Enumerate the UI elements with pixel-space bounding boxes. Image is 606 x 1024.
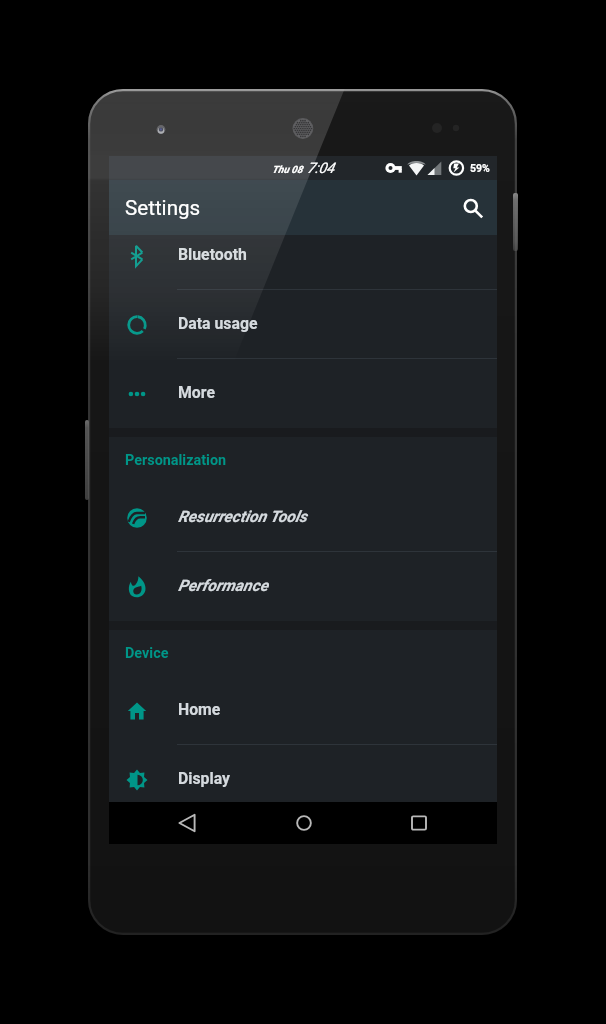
button[interactable]: Recents xyxy=(391,802,447,844)
staticText: 7:04 xyxy=(307,160,335,177)
button[interactable]: Bluetooth xyxy=(109,235,497,290)
button[interactable]: Resurrection Tools xyxy=(109,483,497,552)
staticText: Settings xyxy=(125,196,201,220)
staticText: More xyxy=(178,383,215,402)
staticText: Performance xyxy=(178,576,268,595)
button[interactable]: Home xyxy=(276,802,332,844)
button[interactable]: Data usage xyxy=(109,290,497,359)
staticText: Display xyxy=(178,769,230,788)
staticText: Thu 08 xyxy=(272,164,303,176)
button[interactable]: Search xyxy=(451,186,495,230)
button[interactable]: Back xyxy=(159,802,215,844)
button[interactable]: Display xyxy=(109,745,497,802)
staticText: Bluetooth xyxy=(178,245,247,264)
staticText: 59% xyxy=(470,162,490,174)
staticText: Home xyxy=(178,700,221,719)
staticText: Personalization xyxy=(125,452,227,469)
staticText: Device xyxy=(125,645,169,662)
button[interactable]: Performance xyxy=(109,552,497,621)
button[interactable]: More xyxy=(109,359,497,428)
staticText: Data usage xyxy=(178,314,258,333)
button[interactable]: Home xyxy=(109,676,497,745)
staticText: Resurrection Tools xyxy=(178,507,307,526)
